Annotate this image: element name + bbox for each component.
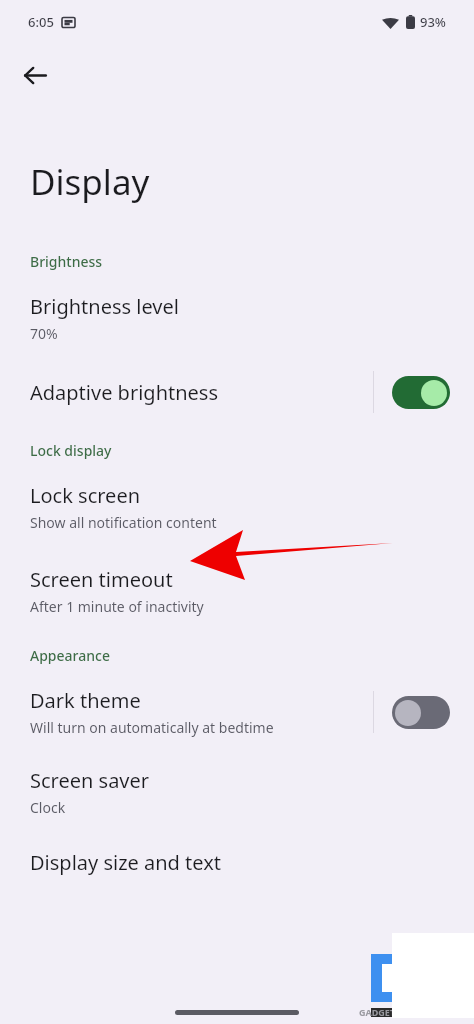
button[interactable]: Adaptive brightness bbox=[0, 371, 474, 413]
staticText: 6:05 bbox=[28, 13, 54, 31]
staticText: Dark theme bbox=[30, 687, 141, 714]
button[interactable]: Screen timeout bbox=[0, 566, 474, 616]
button[interactable]: Dark theme bbox=[0, 687, 474, 737]
staticText: 70% bbox=[30, 324, 58, 343]
staticText: After 1 minute of inactivity bbox=[30, 597, 204, 616]
staticText: Screen timeout bbox=[30, 566, 173, 593]
staticText: Screen saver bbox=[30, 767, 150, 794]
button[interactable]: Screen saver bbox=[0, 767, 474, 817]
staticText: Display bbox=[30, 158, 150, 206]
staticText: Clock bbox=[30, 798, 66, 817]
staticText: Display size and text bbox=[30, 849, 222, 876]
button[interactable]: Back bbox=[14, 54, 56, 96]
button[interactable]: Off bbox=[392, 696, 450, 729]
staticText: Lock screen bbox=[30, 482, 141, 509]
staticText: Lock display bbox=[30, 441, 112, 460]
staticText: Show all notification content bbox=[30, 513, 217, 532]
staticText: Adaptive brightness bbox=[30, 379, 219, 406]
button[interactable]: Display size and text bbox=[0, 849, 474, 876]
button[interactable]: Brightness level bbox=[0, 293, 474, 343]
button[interactable]: Lock screen bbox=[0, 482, 474, 532]
staticText: GADGETS TO USE bbox=[359, 1006, 434, 1018]
staticText: Appearance bbox=[30, 646, 110, 665]
staticText: 93% bbox=[420, 13, 446, 31]
staticText: Will turn on automatically at bedtime bbox=[30, 718, 274, 737]
staticText: Brightness bbox=[30, 252, 103, 271]
button[interactable]: On bbox=[392, 376, 450, 409]
staticText: Brightness level bbox=[30, 293, 179, 320]
